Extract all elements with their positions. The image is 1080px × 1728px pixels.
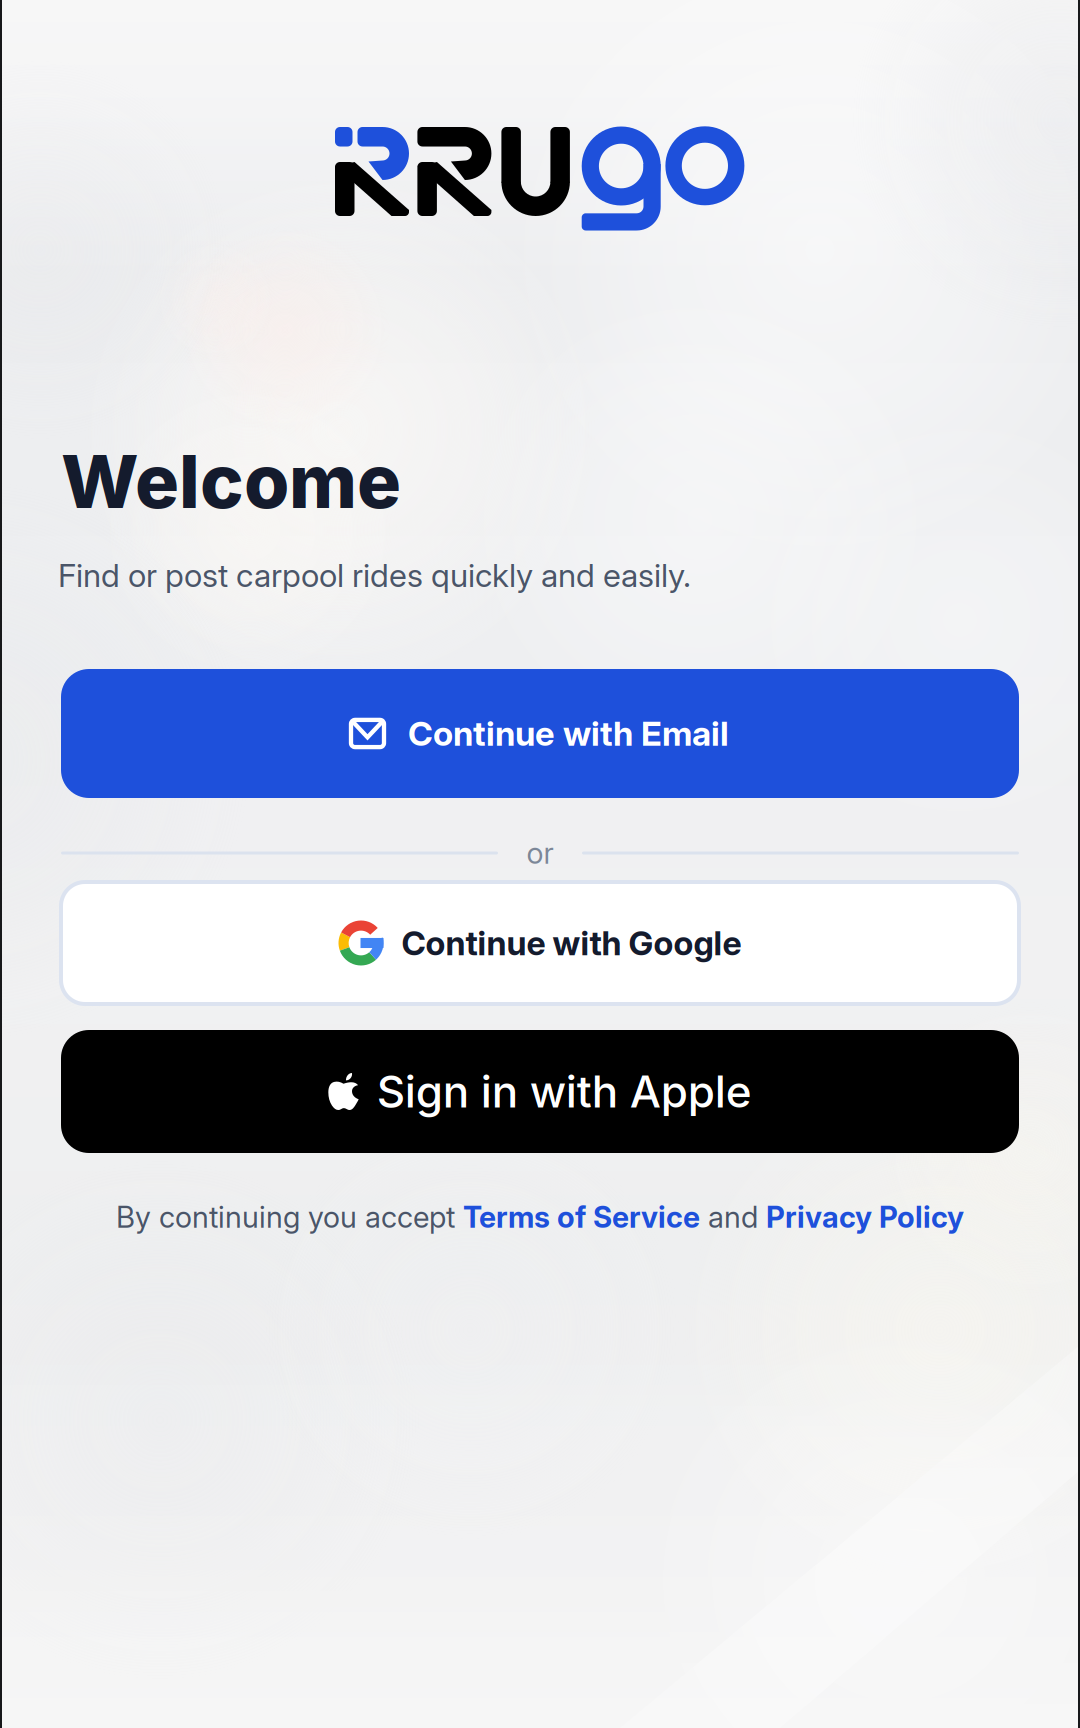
staticText: Terms of Service <box>463 1199 700 1235</box>
button[interactable]: Continue with Google <box>61 882 1019 1004</box>
staticText: Continue with Email <box>408 713 729 754</box>
staticText: and <box>700 1199 766 1235</box>
staticText: Privacy Policy <box>766 1199 964 1235</box>
staticText: or <box>526 835 553 871</box>
staticText: Sign in with Apple <box>377 1065 752 1118</box>
button[interactable]: Privacy Policy <box>766 1199 964 1235</box>
staticText: Welcome <box>61 437 401 526</box>
staticText: Continue with Google <box>401 923 741 963</box>
button[interactable]: Continue with Email <box>61 669 1019 798</box>
staticText: Find or post carpool rides quickly and e… <box>58 556 691 595</box>
staticText: By continuing you accept <box>116 1199 463 1235</box>
button[interactable]: Terms of Service <box>463 1199 700 1235</box>
button[interactable]: Sign in with Apple <box>61 1030 1019 1153</box>
